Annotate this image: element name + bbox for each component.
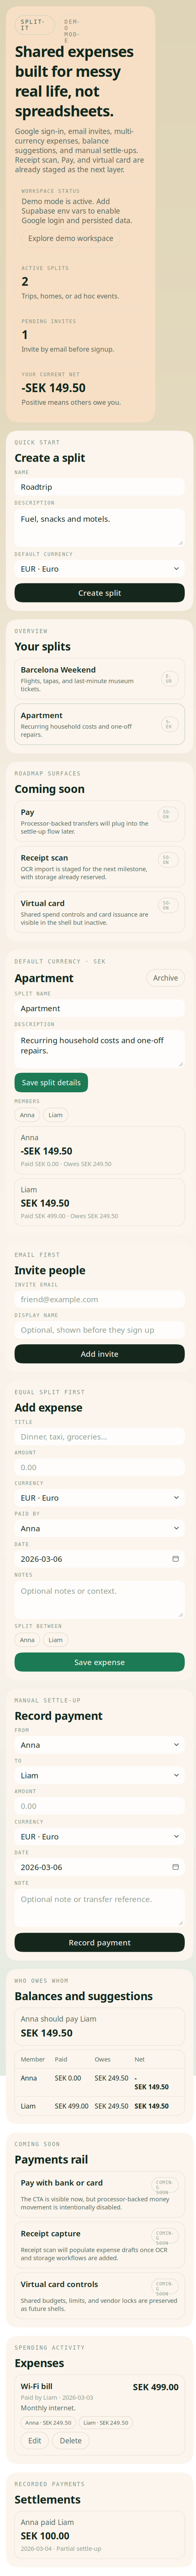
- staticText: -SEK 149.50: [22, 380, 86, 395]
- staticText: Receipt scan: [21, 852, 68, 863]
- staticText: Paid: [55, 2055, 67, 2063]
- staticText: Anna: [21, 1523, 40, 1533]
- staticText: RECORDED PAYMENTS: [15, 2481, 84, 2487]
- staticText: Recurring household costs and one-off re…: [21, 722, 132, 739]
- staticText: PAID BY: [15, 1511, 39, 1517]
- staticText: Paid SEK 0.00 · Owes SEK 249.50: [21, 1160, 111, 1168]
- staticText: Explore demo workspace: [28, 233, 113, 243]
- staticText: ACTIVE SPLITS: [22, 265, 68, 271]
- staticText: Optional, shown before they sign up: [21, 1325, 154, 1335]
- staticText: Invite people: [15, 1263, 86, 1277]
- button[interactable]: Apartment: [15, 704, 185, 745]
- staticText: Wi-Fi bill: [21, 2381, 52, 2391]
- staticText: SEK 249.50: [95, 2074, 128, 2082]
- staticText: EUR: [166, 674, 174, 684]
- staticText: Your splits: [15, 639, 71, 654]
- staticText: Shared spend controls and card issuance …: [21, 910, 148, 926]
- staticText: SEK 499.00: [133, 2381, 179, 2393]
- staticText: SEK 149.50: [21, 1197, 69, 1209]
- staticText: CURRENCY: [15, 1819, 43, 1825]
- staticText: COMING SOON: [156, 2180, 174, 2190]
- staticText: Coming soon: [15, 781, 85, 796]
- staticText: 2026-03-06: [21, 1554, 62, 1564]
- staticText: 2026-03-06: [21, 1862, 62, 1872]
- staticText: PENDING INVITES: [22, 319, 76, 324]
- staticText: Anna: [21, 1740, 40, 1750]
- staticText: EQUAL SPLIT FIRST: [15, 1389, 84, 1395]
- staticText: Apartment: [21, 1003, 60, 1013]
- staticText: SEK 100.00: [21, 2529, 69, 2542]
- staticText: Optional note or transfer reference.: [21, 1894, 152, 1904]
- button[interactable]: Delete: [52, 2432, 89, 2449]
- staticText: Dinner, taxi, groceries...: [21, 1431, 107, 1442]
- staticText: INVITE EMAIL: [15, 1282, 58, 1288]
- staticText: SPLITIT: [21, 19, 49, 31]
- staticText: Add expense: [15, 1400, 83, 1415]
- staticText: Anna: [20, 1636, 34, 1644]
- staticText: 0.00: [21, 1462, 37, 1472]
- staticText: NOTE: [15, 1880, 28, 1886]
- staticText: Liam · SEK 249.50: [83, 2419, 128, 2426]
- staticText: Receipt scan will populate expense draft…: [21, 2246, 167, 2262]
- staticText: Shared budgets, limits, and vendor locks…: [21, 2296, 177, 2313]
- staticText: 2026-03-04 · Partial settle-up: [21, 2544, 101, 2553]
- staticText: QUICK START: [15, 439, 59, 446]
- button[interactable]: Explore demo workspace: [22, 228, 120, 247]
- button[interactable]: Save split details: [15, 1073, 88, 1092]
- staticText: Google sign-in, email invites, multi-cur…: [15, 126, 144, 174]
- staticText: Pay: [21, 807, 34, 817]
- button[interactable]: Create split: [15, 583, 185, 602]
- staticText: AMOUNT: [15, 1450, 36, 1455]
- staticText: Save split details: [22, 1078, 81, 1087]
- staticText: Apartment: [15, 970, 74, 985]
- staticText: SEK 249.50: [95, 2102, 128, 2110]
- staticText: Member: [21, 2055, 45, 2063]
- staticText: Roadtrip: [21, 482, 52, 492]
- staticText: Anna paid Liam: [21, 2517, 74, 2527]
- staticText: EMAIL FIRST: [15, 1252, 59, 1258]
- button[interactable]: Record payment: [15, 1933, 185, 1952]
- staticText: Save expense: [74, 1657, 125, 1667]
- staticText: Edit: [28, 2436, 41, 2445]
- staticText: Settlements: [15, 2492, 81, 2507]
- staticText: SEK 0.00: [55, 2074, 81, 2082]
- staticText: Monthly internet.: [21, 2403, 76, 2412]
- staticText: WHO OWES WHOM: [15, 1978, 68, 1984]
- staticText: Create split: [78, 588, 121, 598]
- staticText: DEMO MODE: [64, 19, 81, 31]
- staticText: ROADMAP SURFACES: [15, 770, 80, 777]
- staticText: -SEK 149.50: [21, 1145, 72, 1157]
- staticText: Virtual card controls: [21, 2279, 98, 2289]
- staticText: Invite by email before signup.: [22, 345, 114, 353]
- staticText: Barcelona Weekend: [21, 664, 96, 675]
- button[interactable]: Edit: [21, 2432, 49, 2449]
- staticText: EUR · Euro: [21, 1493, 59, 1503]
- staticText: AMOUNT: [15, 1789, 36, 1794]
- button[interactable]: Save expense: [15, 1653, 185, 1672]
- staticText: SOON: [163, 855, 174, 865]
- staticText: friend@example.com: [21, 1294, 98, 1304]
- staticText: DISPLAY NAME: [15, 1312, 58, 1318]
- staticText: OVERVIEW: [15, 628, 47, 634]
- staticText: SEK 499.00: [55, 2102, 88, 2110]
- staticText: Pay with bank or card: [21, 2177, 103, 2188]
- button[interactable]: Archive: [147, 969, 185, 986]
- staticText: DATE: [15, 1850, 28, 1855]
- staticText: 1: [22, 327, 28, 342]
- staticText: SPLIT NAME: [15, 991, 50, 997]
- staticText: SPLIT BETWEEN: [15, 1623, 61, 1629]
- staticText: Virtual card: [21, 898, 65, 908]
- staticText: Apartment: [21, 710, 63, 720]
- staticText: COMING SOON: [156, 2231, 174, 2241]
- staticText: 2: [22, 274, 28, 289]
- staticText: Paid SEK 499.00 · Owes SEK 249.50: [21, 1212, 118, 1220]
- staticText: FROM: [15, 1727, 28, 1733]
- staticText: Fuel, snacks and motels.: [21, 514, 110, 524]
- button[interactable]: Barcelona Weekend: [15, 658, 185, 699]
- staticText: DATE: [15, 1542, 28, 1547]
- staticText: Shared expenses built for messy real lif…: [15, 41, 134, 121]
- staticText: Record payment: [69, 1937, 131, 1948]
- button[interactable]: Add invite: [15, 1344, 185, 1363]
- staticText: SEK 149.50: [21, 2026, 73, 2039]
- staticText: - SEK 149.50: [135, 2074, 169, 2091]
